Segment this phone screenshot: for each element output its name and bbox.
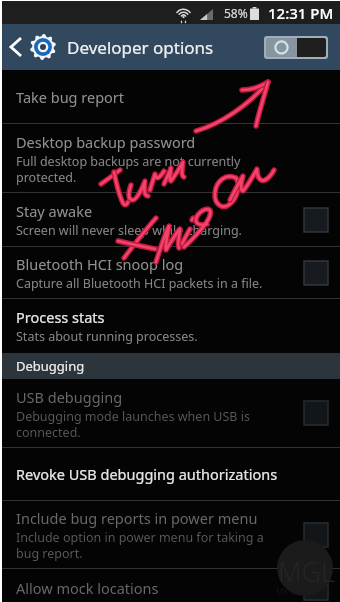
staticText: Stay awake: [16, 201, 93, 221]
staticText: Full desktop backups are not currently p…: [16, 153, 241, 185]
staticText: Allow mock locations: [16, 578, 159, 598]
staticText: 12:31 PM: [268, 3, 334, 23]
staticText: Debugging: [16, 357, 85, 375]
staticText: Desktop backup password: [16, 132, 196, 152]
staticText: Take bug report: [16, 87, 125, 107]
staticText: Process stats: [16, 307, 105, 327]
staticText: Stats about running processes.: [16, 328, 198, 345]
button[interactable]: Back: [2, 24, 30, 70]
button[interactable]: Desktop backup password: [2, 124, 340, 192]
staticText: MY GADGET IS: [276, 586, 331, 597]
button[interactable]: Allow mock locations: [2, 569, 340, 602]
staticText: MGL: [278, 553, 335, 590]
button[interactable]: Take bug report: [2, 70, 340, 123]
staticText: USB debugging: [16, 387, 123, 407]
staticText: Debugging mode launches when USB is conn…: [16, 408, 250, 440]
button[interactable]: Bluetooth HCI snoop log: [2, 247, 340, 298]
staticText: Bluetooth HCI snoop log: [16, 254, 184, 274]
button[interactable]: USB debugging: [2, 379, 340, 447]
staticText: Revoke USB debugging authorizations: [16, 464, 278, 484]
staticText: Capture all Bluetooth HCI packets in a f…: [16, 275, 263, 292]
staticText: Developer options: [67, 36, 214, 59]
staticText: Include option in power menu for taking …: [16, 529, 264, 561]
staticText: Include bug reports in power menu: [16, 508, 258, 528]
button[interactable]: Revoke USB debugging authorizations: [2, 448, 340, 500]
staticText: Screen will never sleep while charging.: [16, 222, 242, 239]
button[interactable]: Toggle developer options: [264, 36, 328, 59]
button[interactable]: Include bug reports in power menu: [2, 501, 340, 568]
button[interactable]: Stay awake: [2, 193, 340, 246]
button[interactable]: Process stats: [2, 299, 340, 353]
staticText: 58%: [224, 5, 248, 21]
